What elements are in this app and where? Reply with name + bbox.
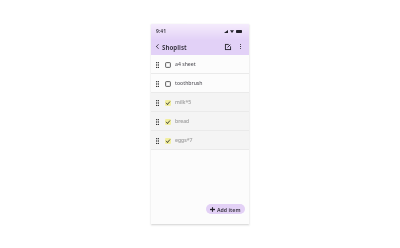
staticText: eggs*7: [175, 137, 193, 144]
button[interactable]: Add item: [206, 204, 245, 214]
button[interactable]: milk*5: [151, 93, 249, 112]
staticText: bread: [175, 118, 190, 125]
staticText: milk*5: [175, 99, 192, 106]
button[interactable]: Edit: [223, 42, 233, 52]
button[interactable]: toothbrush: [151, 74, 249, 93]
button[interactable]: bread: [151, 112, 249, 131]
button[interactable]: eggs*7: [151, 131, 249, 150]
button[interactable]: More options: [236, 42, 245, 51]
staticText: toothbrush: [175, 80, 203, 87]
button[interactable]: a4 sheet: [151, 55, 249, 74]
button[interactable]: Back: [153, 42, 162, 51]
staticText: 9:41: [156, 28, 166, 35]
staticText: a4 sheet: [175, 61, 196, 68]
staticText: Add item: [217, 206, 241, 213]
staticText: Shoplist: [162, 43, 187, 51]
